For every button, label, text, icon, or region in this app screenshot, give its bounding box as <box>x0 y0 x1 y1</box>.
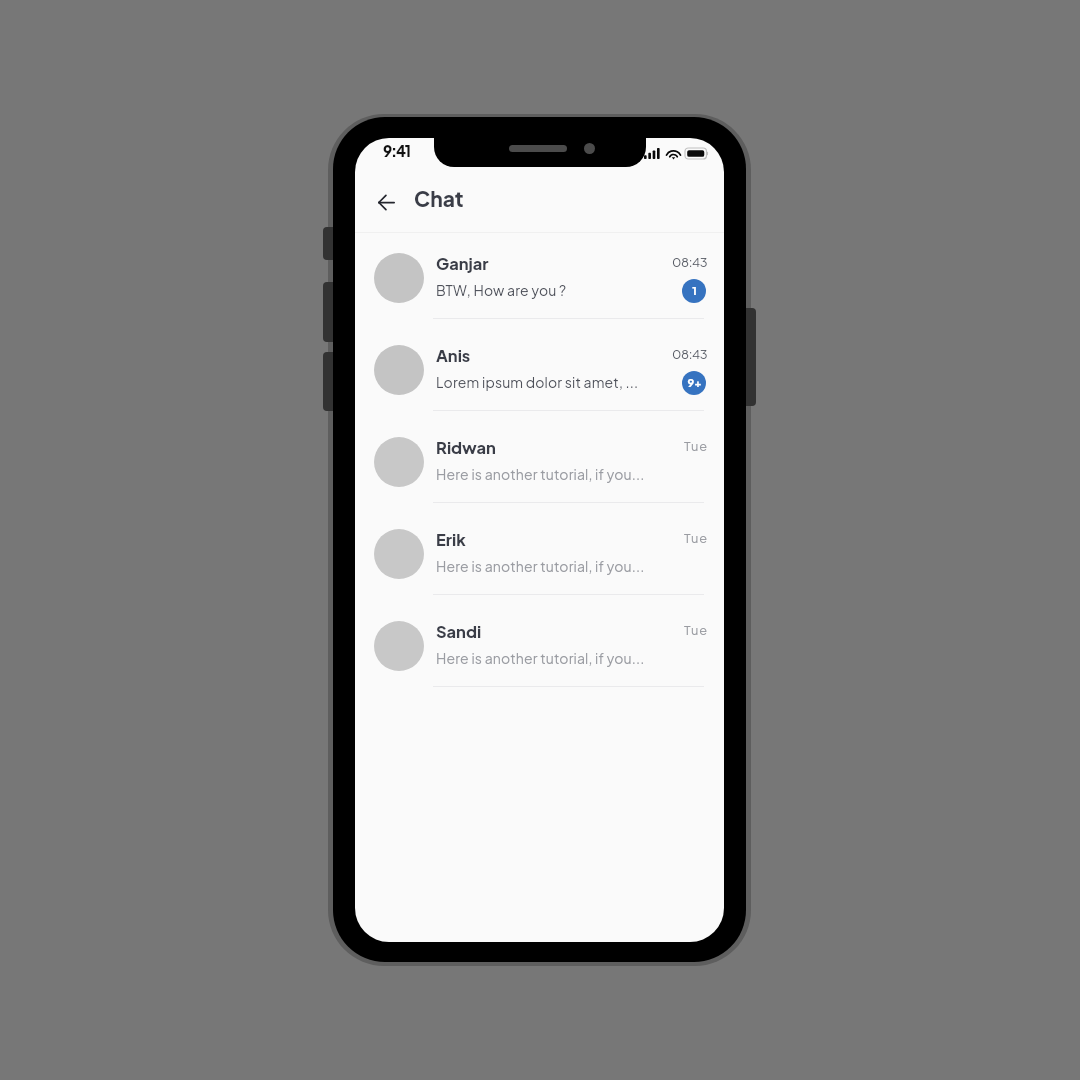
staticText: Ganjar <box>436 253 489 274</box>
staticText: Sandi <box>436 621 482 642</box>
button[interactable]: Ridwan <box>355 416 724 508</box>
staticText: 08:43 <box>672 254 708 270</box>
staticText: Anis <box>436 345 471 366</box>
staticText: Here is another tutorial, if you... <box>436 465 645 483</box>
button[interactable]: Anis <box>355 324 724 416</box>
staticText: Tue <box>684 530 708 546</box>
staticText: Lorem ipsum dolor sit amet, ... <box>436 373 639 391</box>
staticText: 08:43 <box>672 346 708 362</box>
button[interactable]: Erik <box>355 508 724 600</box>
staticText: Erik <box>436 529 466 550</box>
staticText: Here is another tutorial, if you... <box>436 557 645 575</box>
staticText: BTW, How are you ? <box>436 281 567 299</box>
staticText: Tue <box>684 622 708 638</box>
staticText: Tue <box>684 438 708 454</box>
staticText: 9:41 <box>383 141 410 160</box>
staticText: Here is another tutorial, if you... <box>436 649 645 667</box>
staticText: Chat <box>414 185 464 211</box>
button[interactable]: Ganjar <box>355 232 724 324</box>
staticText: Ridwan <box>436 437 496 458</box>
button[interactable]: Sandi <box>355 600 724 692</box>
button[interactable]: Back <box>367 183 405 221</box>
staticText: 9+ <box>687 376 702 390</box>
staticText: 1 <box>692 284 697 298</box>
